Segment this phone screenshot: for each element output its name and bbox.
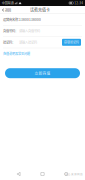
- staticText: 立即充值: [34, 70, 50, 76]
- staticText: 验证码：: [3, 40, 15, 45]
- button[interactable]: 获取验证码: [62, 39, 81, 46]
- button[interactable]: Home: [37, 169, 47, 179]
- staticText: 充值号码：: [3, 29, 18, 33]
- staticText: 话费充值卡: [30, 7, 50, 13]
- staticText: 12:34: [74, 1, 83, 5]
- button[interactable]: Recents: [61, 169, 71, 179]
- staticText: 请输入充值号码: [19, 29, 40, 33]
- button[interactable]: 返回: [0, 6, 13, 14]
- staticText: 返回: [5, 8, 11, 12]
- staticText: 运营商名称：: [3, 17, 21, 22]
- button[interactable]: 充值说明及常见问题: [3, 50, 30, 57]
- button[interactable]: Back: [14, 169, 24, 179]
- staticText: 请输入验证码: [19, 40, 37, 45]
- staticText: 获取验证码: [64, 40, 79, 44]
- staticText: 图片来源网络: [65, 172, 83, 176]
- staticText: 中国联通: [2, 1, 14, 5]
- button[interactable]: 立即充值: [5, 68, 80, 78]
- staticText: 13800138000: [19, 17, 41, 22]
- staticText: 充值说明及常见问题: [3, 51, 30, 56]
